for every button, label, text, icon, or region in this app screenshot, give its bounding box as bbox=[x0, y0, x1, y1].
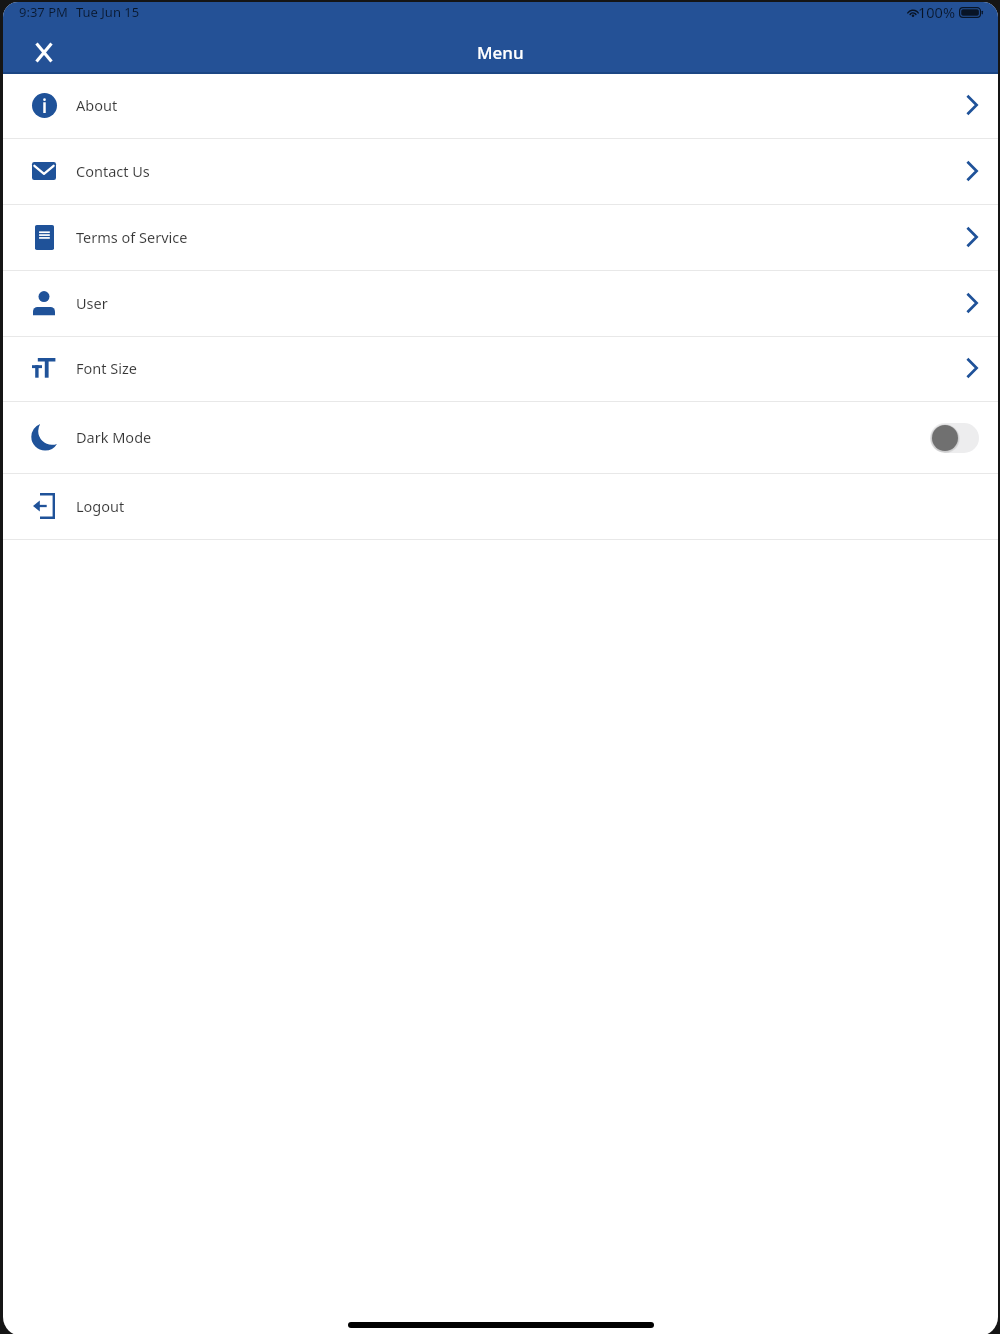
button[interactable]: User bbox=[3, 271, 998, 336]
staticText: About bbox=[76, 95, 118, 115]
staticText: 100% bbox=[918, 2, 955, 22]
button[interactable]: Font Size bbox=[3, 337, 998, 401]
button[interactable]: Logout bbox=[3, 474, 998, 539]
button[interactable]: Dark Mode bbox=[3, 402, 998, 473]
staticText: Logout bbox=[76, 496, 125, 516]
staticText: Tue Jun 15 bbox=[76, 3, 140, 21]
button[interactable]: Dark Mode toggle bbox=[930, 423, 979, 453]
staticText: User bbox=[76, 293, 108, 313]
staticText: Menu bbox=[477, 41, 524, 64]
button[interactable]: About bbox=[3, 74, 998, 138]
staticText: Contact Us bbox=[76, 161, 150, 181]
staticText: Terms of Service bbox=[76, 227, 188, 247]
button[interactable]: Close bbox=[21, 30, 67, 74]
staticText: Font Size bbox=[76, 358, 137, 378]
staticText: 9:37 PM bbox=[19, 3, 68, 21]
staticText: Dark Mode bbox=[76, 427, 152, 447]
button[interactable]: Terms of Service bbox=[3, 205, 998, 270]
button[interactable]: Contact Us bbox=[3, 139, 998, 204]
